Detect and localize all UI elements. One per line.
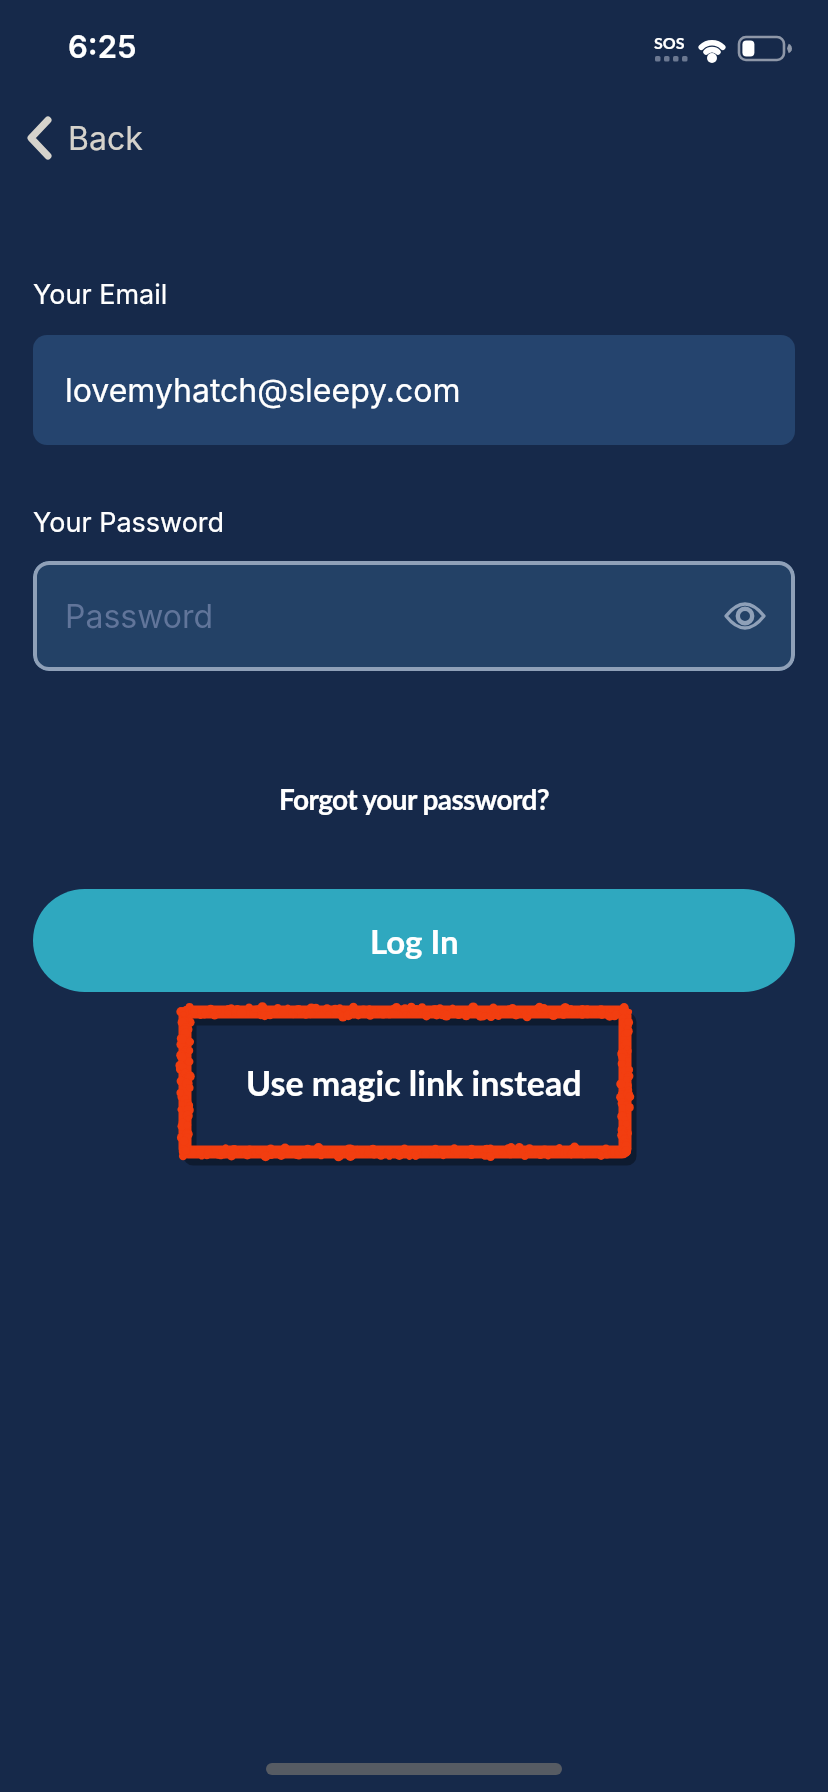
staticText: lovemyhatch@sleepy.com: [65, 371, 461, 410]
staticText: Log In: [370, 921, 459, 961]
staticText: Your Password: [33, 506, 225, 539]
button[interactable]: Forgot your password?: [279, 782, 549, 816]
button[interactable]: [175, 1002, 635, 1162]
staticText: Your Email: [33, 278, 168, 311]
button[interactable]: Password: [33, 561, 795, 671]
button[interactable]: lovemyhatch@sleepy.com: [33, 335, 795, 445]
staticText: Password: [65, 597, 214, 636]
staticText: 6:25: [68, 28, 137, 66]
button[interactable]: Use magic link instead: [246, 1062, 582, 1103]
staticText: Back: [68, 119, 143, 158]
button[interactable]: Log In: [33, 889, 795, 992]
button[interactable]: Back: [26, 117, 143, 159]
staticText: SOS: [654, 33, 685, 52]
